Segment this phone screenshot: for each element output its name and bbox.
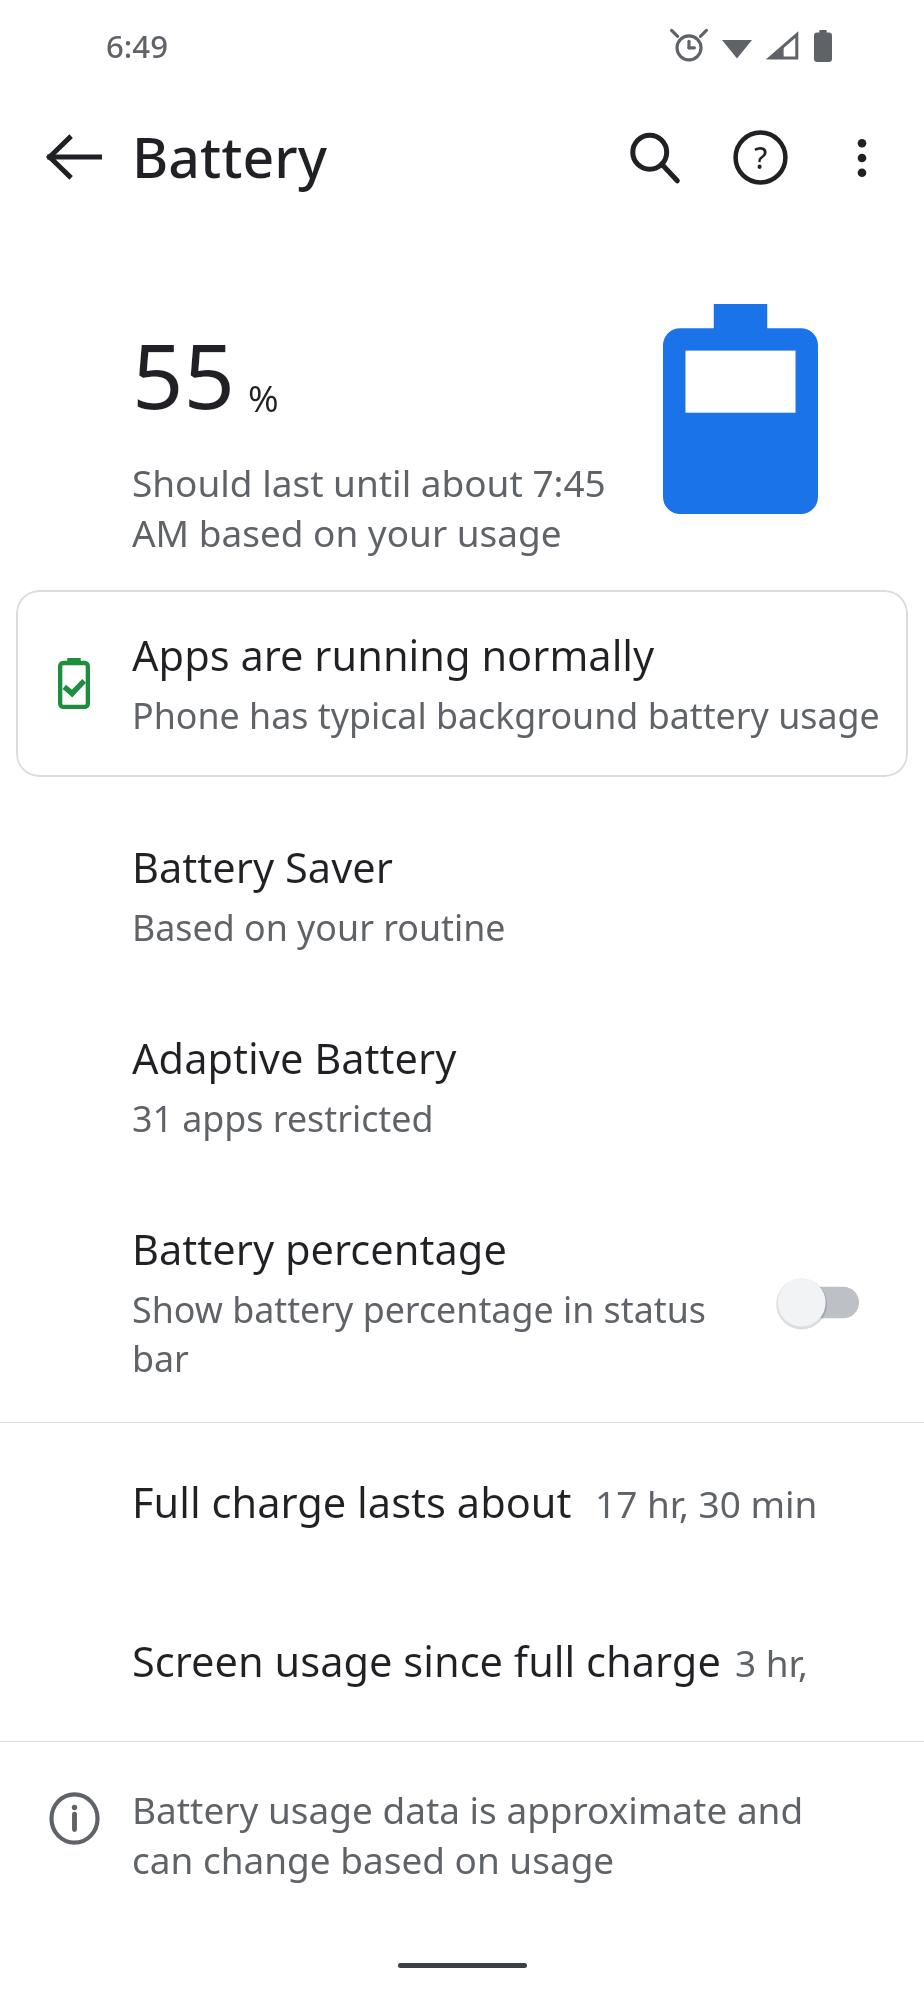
staticText: 6:49	[106, 25, 168, 67]
button[interactable]: Battery percentage toggle	[776, 1277, 859, 1328]
staticText: Full charge lasts about	[132, 1474, 572, 1531]
staticText: Adaptive Battery	[132, 1030, 457, 1087]
staticText: 3 hr, 16 min	[735, 1637, 818, 1687]
button[interactable]: More options	[813, 109, 910, 206]
button[interactable]: Battery Saver	[0, 800, 924, 991]
staticText: Should last until about 7:45 AM based on…	[132, 457, 640, 558]
staticText: 55	[132, 313, 236, 436]
button[interactable]: Search	[601, 104, 707, 210]
staticText: Battery usage data is approximate and ca…	[132, 1784, 818, 1885]
staticText: Based on your routine	[132, 903, 506, 952]
button[interactable]: Help	[707, 104, 813, 210]
staticText: Phone has typical background battery usa…	[132, 691, 880, 740]
button[interactable]: Battery percentage	[0, 1182, 924, 1422]
button[interactable]: Full charge lasts about	[0, 1423, 924, 1582]
staticText: Show battery percentage in status bar	[132, 1285, 762, 1383]
staticText: Battery Saver	[132, 839, 393, 896]
button[interactable]: Adaptive Battery	[0, 991, 924, 1182]
staticText: 17 hr, 30 min	[595, 1478, 818, 1528]
button[interactable]: Screen usage since full charge	[0, 1582, 924, 1741]
button[interactable]: Apps are running normally	[16, 590, 908, 777]
staticText: Battery percentage	[132, 1221, 507, 1278]
staticText: Screen usage since full charge	[132, 1633, 721, 1690]
staticText: Apps are running normally	[132, 627, 655, 684]
staticText: Battery	[132, 119, 327, 195]
staticText: 31 apps restricted	[132, 1094, 434, 1143]
button[interactable]: Back	[18, 101, 129, 212]
staticText: %	[248, 372, 279, 422]
staticText: ?	[754, 137, 768, 178]
